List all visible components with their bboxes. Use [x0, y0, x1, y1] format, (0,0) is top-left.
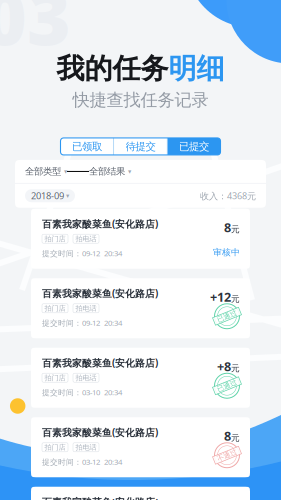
button[interactable]: 全部类型 — [25, 166, 67, 177]
staticText: 8 — [224, 427, 231, 444]
button[interactable]: 百素我家酸菜鱼(安化路店) — [31, 487, 250, 500]
staticText: 元 — [231, 363, 240, 374]
staticText: 提交时间：09-12 20:34 — [42, 317, 122, 328]
staticText: 全部类型 — [25, 166, 61, 177]
staticText: 已通过 — [216, 312, 237, 321]
staticText: 2018-09 — [31, 189, 64, 202]
staticText: 拍电话 — [75, 304, 96, 313]
staticText: 已通过 — [216, 381, 237, 390]
button[interactable]: 百素我家酸菜鱼(安化路店) — [31, 417, 250, 477]
staticText: 全部结果 — [89, 166, 125, 177]
staticText: 收入：4368元 — [200, 190, 256, 202]
staticText: 百素我家酸菜鱼(安化路店) — [42, 495, 158, 500]
staticText: 待提交 — [125, 140, 155, 153]
staticText: 拍门店 — [44, 234, 65, 243]
staticText: ▾ — [128, 168, 131, 175]
staticText: 百素我家酸菜鱼(安化路店) — [42, 217, 158, 230]
button[interactable]: 百素我家酸菜鱼(安化路店) — [31, 278, 250, 338]
staticText: 元 — [231, 224, 240, 235]
staticText: ▾ — [66, 192, 69, 200]
button[interactable]: 百素我家酸菜鱼(安化路店) — [31, 209, 250, 269]
button[interactable]: 已提交 — [168, 138, 220, 155]
staticText: +8 — [217, 358, 231, 375]
button[interactable]: 全部结果 — [89, 166, 131, 177]
staticText: 明细 — [168, 51, 224, 86]
staticText: 拍门店 — [44, 373, 65, 382]
staticText: 百素我家酸菜鱼(安化路店) — [42, 356, 158, 369]
staticText: 我的任务 — [56, 51, 168, 86]
staticText: 审核中 — [213, 247, 240, 258]
staticText: 百素我家酸菜鱼(安化路店) — [42, 426, 158, 439]
staticText: +12 — [210, 288, 231, 305]
staticText: 元 — [231, 293, 240, 304]
staticText: 03 — [0, 0, 71, 67]
staticText: 拍门店 — [44, 443, 65, 452]
button[interactable]: 待提交 — [114, 138, 167, 155]
staticText: 已领取 — [72, 140, 102, 153]
button[interactable]: 已领取 — [60, 138, 113, 155]
staticText: 拍电话 — [75, 443, 96, 452]
staticText: 已提交 — [179, 140, 209, 153]
staticText: 提交时间：03-12 20:34 — [42, 456, 122, 467]
button[interactable]: 百素我家酸菜鱼(安化路店) — [31, 348, 250, 408]
staticText: ▾ — [64, 168, 67, 175]
staticText: 百素我家酸菜鱼(安化路店) — [42, 287, 158, 300]
staticText: 快捷查找任务记录 — [72, 89, 208, 111]
staticText: 不通过 — [216, 451, 237, 460]
staticText: 提交时间：09-12 20:34 — [42, 248, 122, 258]
staticText: 元 — [231, 432, 240, 443]
staticText: 拍电话 — [75, 234, 96, 243]
staticText: 8 — [224, 219, 231, 236]
staticText: 提交时间：03-10 20:34 — [42, 387, 122, 397]
staticText: 拍门店 — [44, 304, 65, 313]
staticText: 拍电话 — [75, 373, 96, 382]
